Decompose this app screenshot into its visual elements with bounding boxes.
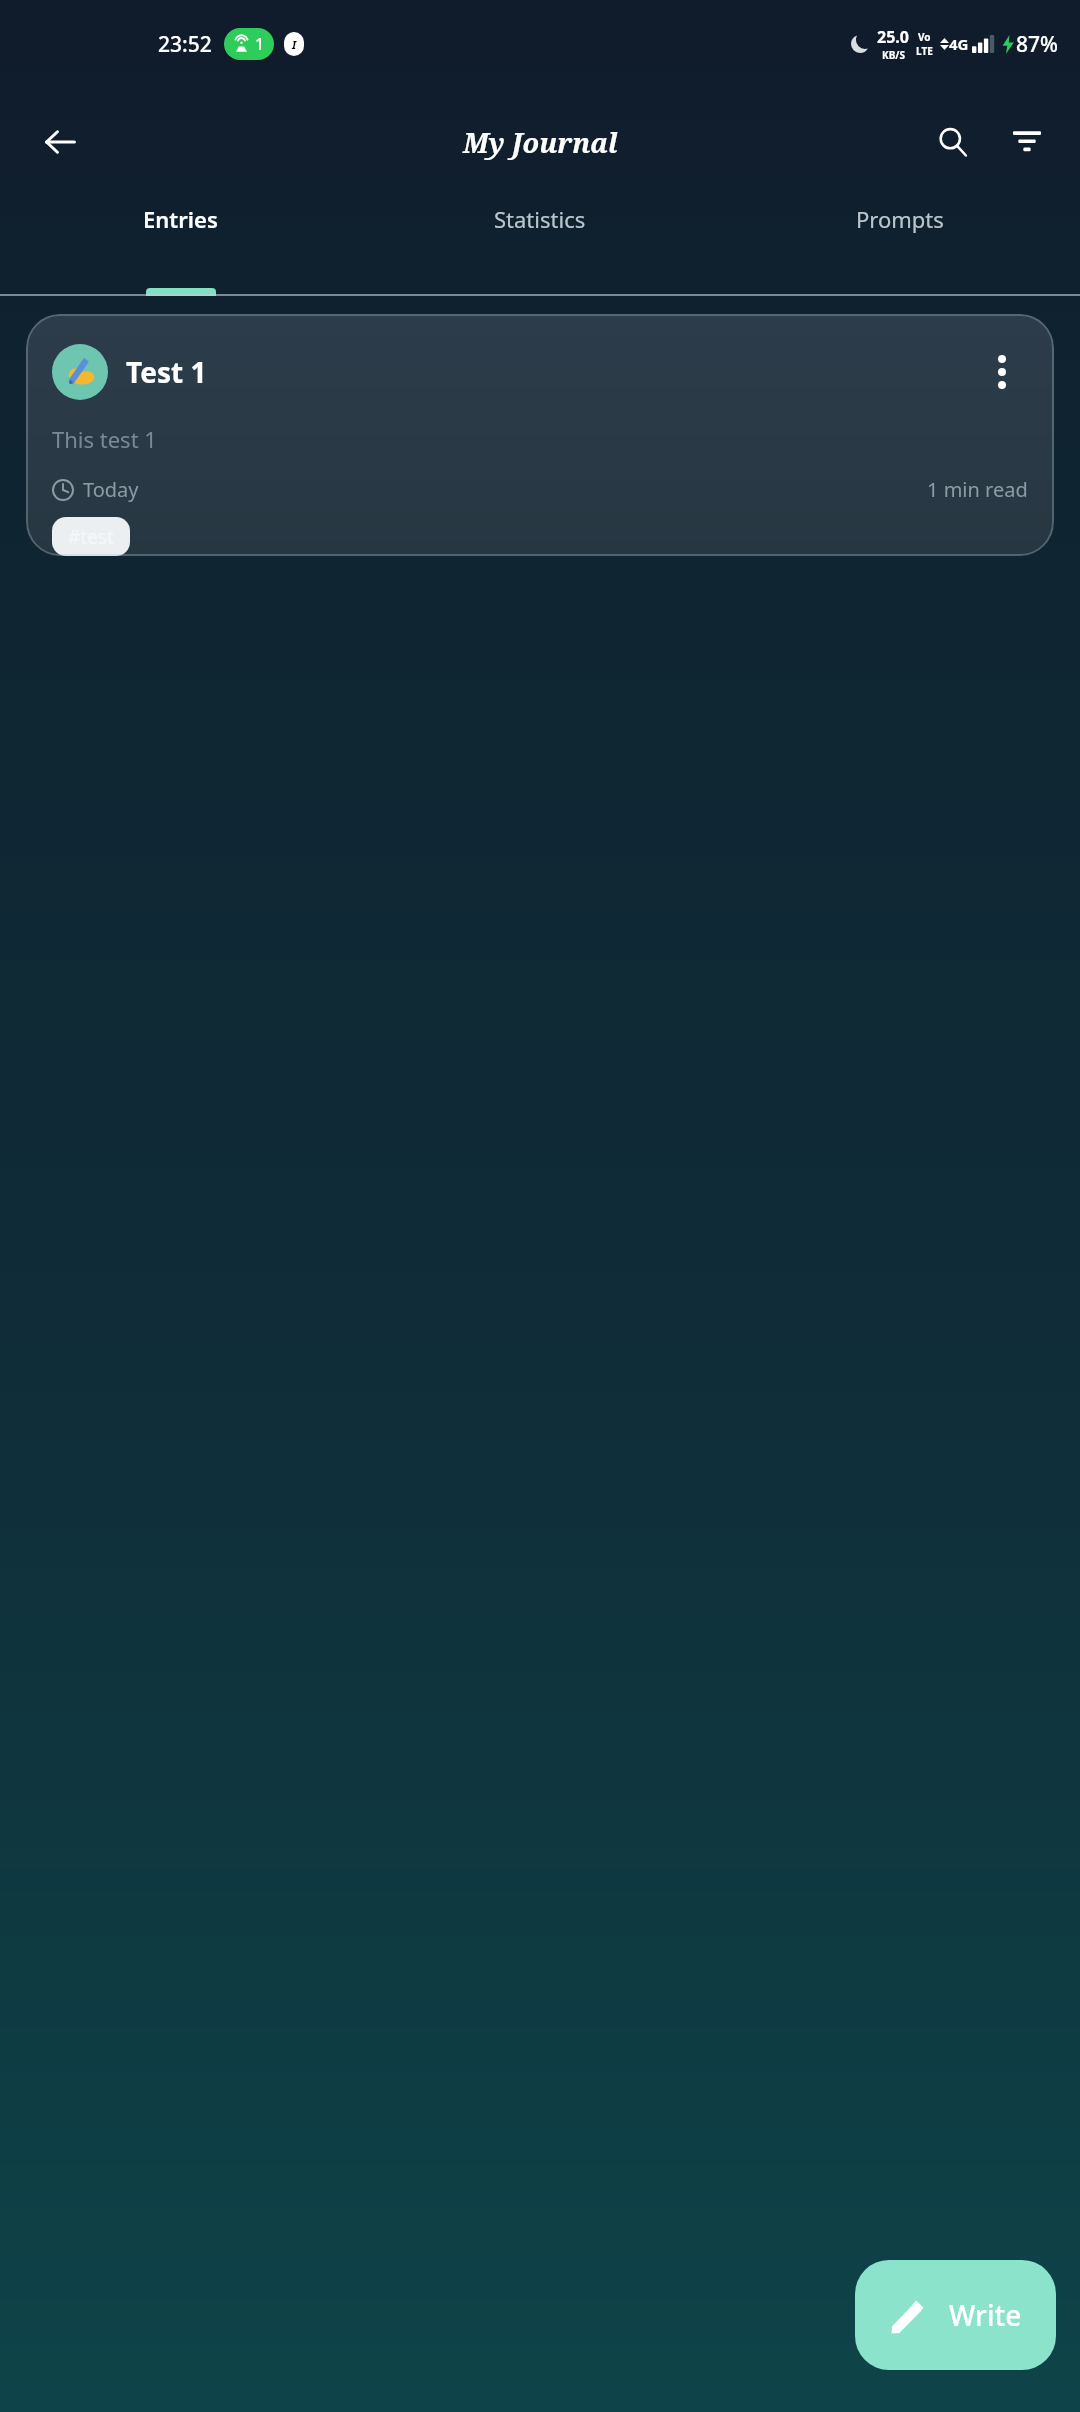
staticText: Statistics <box>494 204 586 234</box>
button[interactable]: Back <box>30 112 90 172</box>
staticText: Write <box>949 2296 1022 2334</box>
button[interactable]: Write <box>855 2260 1056 2370</box>
staticText: Vo <box>918 30 931 44</box>
button[interactable]: Prompts <box>720 196 1080 296</box>
button[interactable]: More options <box>976 346 1028 398</box>
staticText: 1 min read <box>927 476 1028 503</box>
staticText: This test 1 <box>52 424 157 454</box>
staticText: My Journal <box>463 124 618 161</box>
staticText: 4G <box>949 34 969 54</box>
button[interactable]: Search <box>922 111 984 173</box>
button[interactable]: Statistics <box>360 196 720 296</box>
staticText: 1 <box>255 33 265 55</box>
button[interactable]: Test 1 <box>26 314 1054 556</box>
staticText: Today <box>83 476 139 503</box>
staticText: I <box>292 37 297 52</box>
button[interactable]: Entries <box>0 196 360 296</box>
staticText: KB/S <box>882 48 905 62</box>
staticText: 23:52 <box>158 30 212 59</box>
staticText: Test 1 <box>126 353 207 391</box>
button[interactable]: Filter <box>996 111 1058 173</box>
staticText: LTE <box>916 44 933 58</box>
staticText: Entries <box>143 204 218 234</box>
staticText: 25.0 <box>877 26 909 48</box>
staticText: Prompts <box>856 204 944 234</box>
staticText: 87% <box>1016 30 1058 59</box>
